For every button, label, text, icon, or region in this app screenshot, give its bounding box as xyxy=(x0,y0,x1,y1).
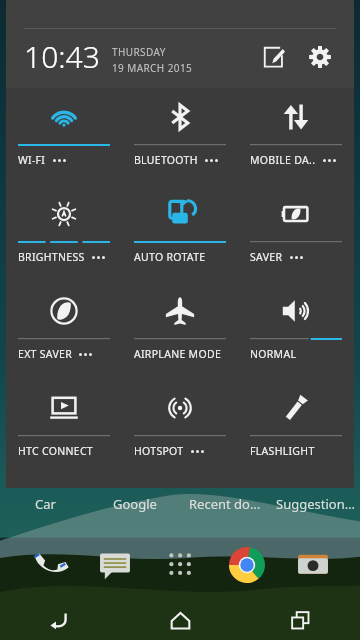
staticText: Recent do… xyxy=(189,495,261,513)
button[interactable]: WI-FI xyxy=(6,88,122,185)
staticText: AIRPLANE MODE xyxy=(134,347,222,361)
button[interactable]: Back xyxy=(0,600,120,640)
staticText: Google xyxy=(113,495,157,513)
button[interactable]: Camera xyxy=(280,543,346,587)
staticText: 19 MARCH 2015 xyxy=(112,61,193,75)
button[interactable]: AIRPLANE MODE xyxy=(122,282,238,379)
button[interactable]: FLASHLIGHT xyxy=(238,379,354,476)
staticText: BRIGHTNESS xyxy=(18,250,85,264)
button[interactable]: HTC CONNECT xyxy=(6,379,122,476)
staticText: HTC CONNECT xyxy=(18,444,93,458)
button[interactable]: Suggestion… xyxy=(270,495,360,513)
staticText: MOBILE DA.. xyxy=(250,153,316,167)
staticText: AUTO ROTATE xyxy=(134,250,206,264)
button[interactable]: Edit xyxy=(254,37,294,77)
button[interactable]: All apps xyxy=(148,543,214,587)
button[interactable]: Chrome xyxy=(214,543,280,587)
staticText: Car xyxy=(35,495,56,513)
button[interactable]: SAVER xyxy=(238,185,354,282)
staticText: WI-FI xyxy=(18,153,46,167)
button[interactable]: AUTO ROTATE xyxy=(122,185,238,282)
button[interactable]: NORMAL xyxy=(238,282,354,379)
staticText: THURSDAY xyxy=(112,45,166,59)
button[interactable]: BRIGHTNESS xyxy=(6,185,122,282)
button[interactable]: Google xyxy=(90,495,180,513)
staticText: 10:43 xyxy=(24,36,100,77)
staticText: BLUETOOTH xyxy=(134,153,198,167)
staticText: Suggestion… xyxy=(276,495,355,513)
button[interactable]: Recent do… xyxy=(180,495,270,513)
staticText: NORMAL xyxy=(250,347,297,361)
button[interactable]: Car xyxy=(0,495,90,513)
staticText: HOTSPOT xyxy=(134,444,184,458)
button[interactable]: Settings xyxy=(300,37,340,77)
button[interactable]: EXT SAVER xyxy=(6,282,122,379)
button[interactable]: Phone xyxy=(14,543,81,587)
button[interactable]: Messages xyxy=(81,543,148,587)
button[interactable]: HOTSPOT xyxy=(122,379,238,476)
button[interactable]: Home xyxy=(120,600,240,640)
button[interactable]: BLUETOOTH xyxy=(122,88,238,185)
button[interactable]: MOBILE DA.. xyxy=(238,88,354,185)
staticText: EXT SAVER xyxy=(18,347,72,361)
staticText: FLASHLIGHT xyxy=(250,444,315,458)
button[interactable]: Recent apps xyxy=(240,600,360,640)
staticText: SAVER xyxy=(250,250,283,264)
